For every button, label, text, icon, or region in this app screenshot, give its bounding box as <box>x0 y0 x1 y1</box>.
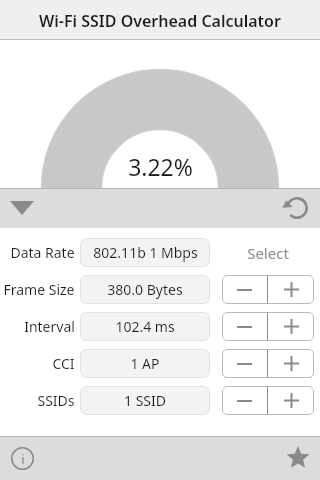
button[interactable]: Select <box>220 238 315 267</box>
button[interactable]: Favorite <box>276 436 320 480</box>
staticText: 802.11b 1 Mbps <box>93 243 198 262</box>
staticText: 102.4 ms <box>115 317 175 336</box>
staticText: Frame Size <box>3 280 75 299</box>
button[interactable]: Increase Interval <box>268 312 314 341</box>
button[interactable]: Increase SSIDs <box>268 386 314 415</box>
staticText: Data Rate <box>10 243 75 262</box>
button[interactable]: Decrease CCI <box>222 349 267 378</box>
button[interactable]: Increase Frame Size <box>268 275 314 304</box>
staticText: i <box>21 450 25 468</box>
staticText: Select <box>247 243 289 263</box>
staticText: SSIDs <box>37 391 75 410</box>
button[interactable]: Collapse <box>0 188 44 228</box>
button[interactable]: Reset <box>274 188 320 228</box>
button[interactable]: 1 AP <box>80 349 210 378</box>
button[interactable]: Decrease SSIDs <box>222 386 267 415</box>
staticText: 380.0 Bytes <box>107 280 183 299</box>
button[interactable]: Decrease Interval <box>222 312 267 341</box>
staticText: 1 AP <box>130 354 160 373</box>
staticText: 1 SSID <box>124 391 166 410</box>
button[interactable]: 102.4 ms <box>80 312 210 341</box>
button[interactable]: Increase CCI <box>268 349 314 378</box>
button[interactable]: Decrease Frame Size <box>222 275 267 304</box>
staticText: Wi-Fi SSID Overhead Calculator <box>39 10 281 32</box>
staticText: Interval <box>24 317 75 336</box>
staticText: CCI <box>52 354 75 373</box>
button[interactable]: 802.11b 1 Mbps <box>80 238 210 267</box>
button[interactable]: Info <box>0 436 44 480</box>
button[interactable]: 380.0 Bytes <box>80 275 210 304</box>
staticText: 3.22% <box>128 151 193 182</box>
button[interactable]: 1 SSID <box>80 386 210 415</box>
